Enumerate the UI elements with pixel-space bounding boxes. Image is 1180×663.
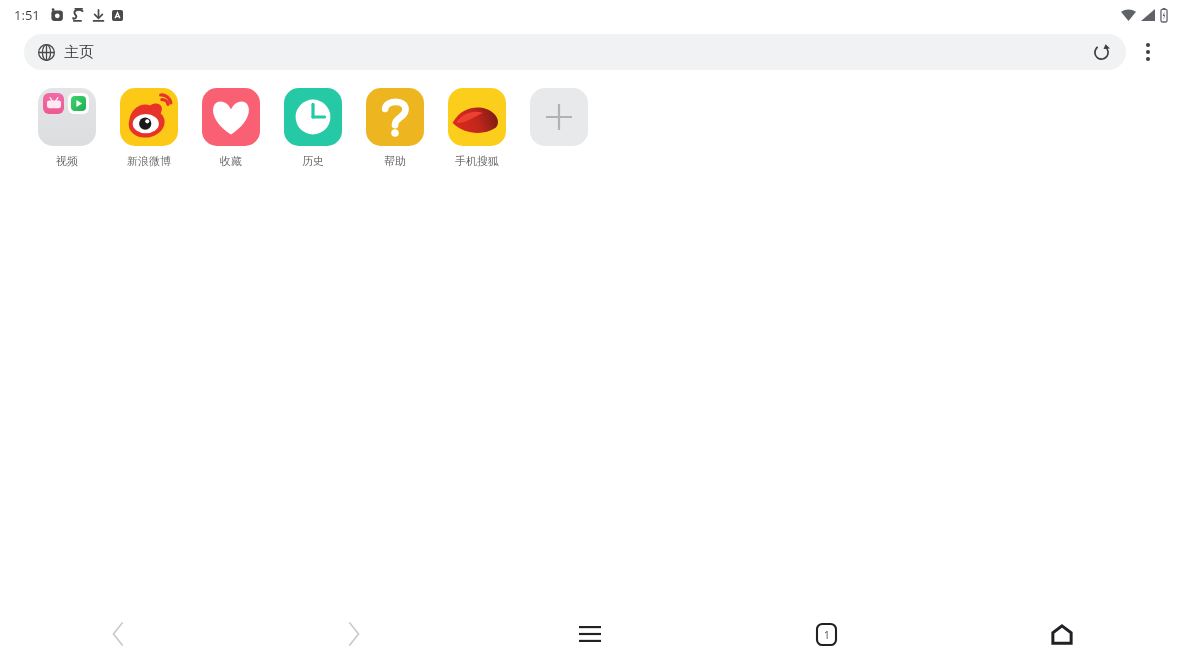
staticText: 1 (824, 628, 830, 642)
staticText: 帮助 (384, 154, 406, 168)
button[interactable]: Refresh (1086, 37, 1116, 67)
staticText: 收藏 (220, 154, 242, 168)
button[interactable]: Tabs, 1 open (708, 605, 944, 663)
staticText: 新浪微博 (127, 154, 171, 168)
button[interactable]: 历史 (272, 88, 354, 168)
button[interactable]: Home (944, 605, 1180, 663)
button[interactable]: 新浪微博 (108, 88, 190, 168)
staticText: 主页 (64, 43, 94, 62)
button[interactable]: 帮助 (354, 88, 436, 168)
staticText: 视频 (56, 154, 78, 168)
button[interactable]: Menu (472, 605, 708, 663)
button[interactable]: 手机搜狐 (436, 88, 518, 168)
button[interactable]: 主页 (24, 34, 1126, 70)
staticText: 历史 (302, 154, 324, 168)
staticText: 手机搜狐 (455, 154, 499, 168)
staticText: 1:51 (14, 6, 40, 24)
button[interactable]: 收藏 (190, 88, 272, 168)
button[interactable]: 视频 (26, 88, 108, 168)
button[interactable]: More options (1126, 30, 1170, 74)
button[interactable]: Add shortcut (530, 88, 588, 146)
